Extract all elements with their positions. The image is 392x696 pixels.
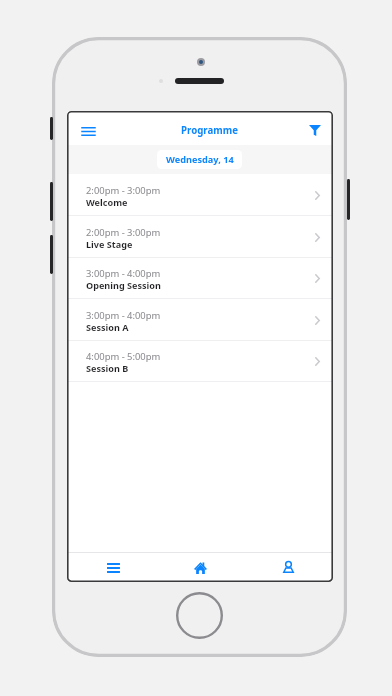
button[interactable]: 3:00pm - 4:00pm <box>67 258 333 299</box>
staticText: 3:00pm - 4:00pm <box>86 267 161 280</box>
staticText: Wednesday, 14 <box>166 153 234 166</box>
button[interactable]: Menu <box>74 119 102 143</box>
button[interactable]: 4:00pm - 5:00pm <box>67 341 333 382</box>
button[interactable]: Profile <box>244 553 333 582</box>
button[interactable]: List <box>67 553 155 582</box>
button[interactable]: 2:00pm - 3:00pm <box>67 217 333 258</box>
button[interactable]: 2:00pm - 3:00pm <box>67 175 333 216</box>
staticText: 4:00pm - 5:00pm <box>86 350 161 363</box>
button[interactable]: Wednesday, 14 <box>157 150 242 169</box>
staticText: Session B <box>86 362 129 374</box>
staticText: 3:00pm - 4:00pm <box>86 309 161 322</box>
staticText: Live Stage <box>86 238 133 250</box>
button[interactable]: Home <box>155 553 244 582</box>
staticText: 2:00pm - 3:00pm <box>86 184 161 197</box>
staticText: Session A <box>86 321 129 333</box>
button[interactable]: 3:00pm - 4:00pm <box>67 300 333 341</box>
staticText: Programme <box>181 124 238 137</box>
staticText: Welcome <box>86 196 128 208</box>
button[interactable]: Filter <box>301 118 329 142</box>
staticText: Opening Session <box>86 279 161 291</box>
staticText: 2:00pm - 3:00pm <box>86 226 161 239</box>
